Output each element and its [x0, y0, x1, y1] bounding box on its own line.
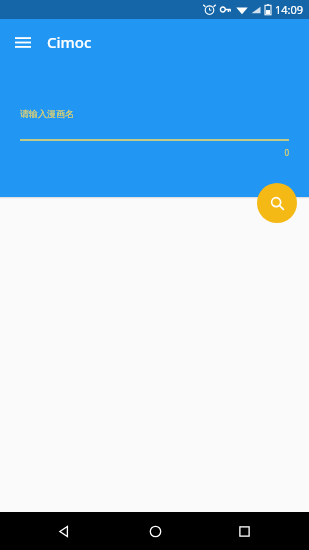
staticText: 0: [278, 147, 289, 158]
button[interactable]: Open navigation drawer: [8, 27, 38, 57]
staticText: 请输入漫画名: [20, 108, 74, 119]
button[interactable]: Recent apps: [227, 512, 261, 550]
staticText: 14:09: [275, 2, 304, 17]
button[interactable]: Back: [46, 512, 80, 550]
staticText: Cimoc: [47, 32, 92, 52]
button[interactable]: Home: [138, 512, 172, 550]
button[interactable]: Search: [257, 183, 297, 223]
